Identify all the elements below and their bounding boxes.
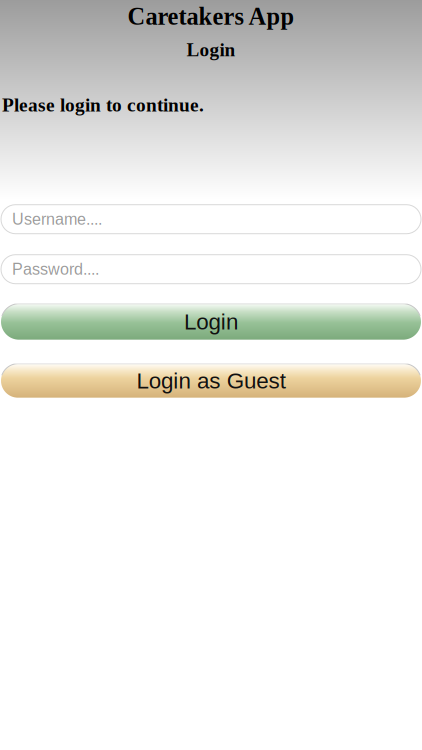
staticText: Login [184, 309, 238, 334]
button[interactable]: Username.... [0, 205, 422, 234]
staticText: Username.... [12, 210, 102, 228]
staticText: Login as Guest [136, 368, 286, 393]
staticText: Login [186, 39, 235, 60]
staticText: Please login to continue. [2, 94, 204, 116]
staticText: Password.... [12, 260, 99, 278]
staticText: Caretakers App [127, 3, 294, 30]
button[interactable]: Login as Guest [0, 364, 422, 398]
button[interactable]: Password.... [0, 255, 422, 284]
button[interactable]: Login [0, 304, 422, 340]
